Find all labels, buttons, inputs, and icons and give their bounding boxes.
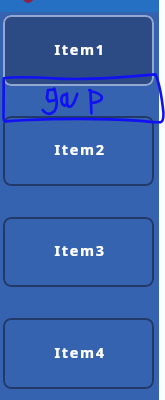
button[interactable]: Item4 [3,318,154,389]
button[interactable]: Item1 [3,15,154,86]
staticText: Item3 [54,241,106,261]
staticText: Item2 [54,140,106,160]
staticText: Item1 [54,40,106,60]
staticText: Item4 [54,343,106,363]
button[interactable]: Item2 [3,116,154,186]
button[interactable]: Item3 [3,217,154,287]
